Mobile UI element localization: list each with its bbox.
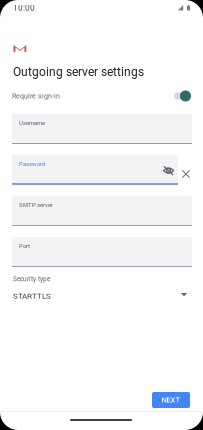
staticText: 10:00 [13, 3, 35, 13]
staticText: Security type [13, 275, 50, 283]
staticText: STARTTLS [13, 291, 51, 301]
button[interactable]: Username [12, 114, 192, 144]
button[interactable]: Require sign-in [12, 88, 191, 104]
button[interactable]: Clear [182, 170, 190, 178]
staticText: Outgoing server settings [13, 65, 144, 79]
button[interactable]: Password [12, 155, 178, 185]
button[interactable]: Security type [13, 275, 192, 305]
button[interactable]: Show password [163, 166, 174, 175]
staticText: NEXT [161, 396, 180, 404]
button[interactable]: Port [12, 237, 192, 267]
staticText: SMTP server [19, 201, 53, 208]
button[interactable]: NEXT [152, 392, 190, 408]
staticText: Port [19, 242, 30, 249]
button[interactable]: SMTP server [12, 196, 192, 226]
staticText: Username [19, 119, 45, 126]
staticText: Password [19, 160, 45, 167]
staticText: Require sign-in [12, 92, 60, 100]
